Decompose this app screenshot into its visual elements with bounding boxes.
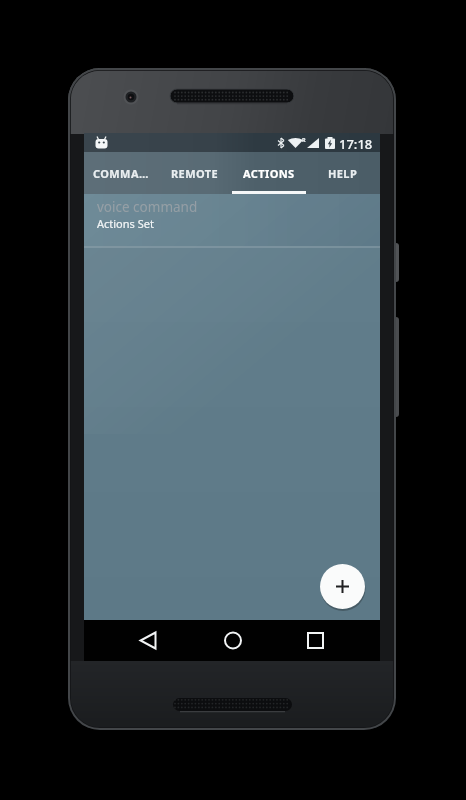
staticText: COMMA…	[93, 166, 149, 181]
button[interactable]	[198, 620, 268, 661]
button[interactable]	[128, 620, 198, 661]
button[interactable]	[320, 564, 365, 609]
staticText: ACTIONS	[243, 166, 295, 181]
button[interactable]	[268, 620, 338, 661]
staticText: HELP	[328, 166, 358, 181]
button[interactable]: voice command	[84, 194, 380, 246]
button[interactable]: HELP	[306, 152, 380, 194]
staticText: voice command	[97, 198, 198, 216]
staticText: 17:18	[339, 135, 373, 153]
button[interactable]: ACTIONS	[232, 152, 306, 194]
staticText: Actions Set	[97, 216, 154, 231]
button[interactable]: COMMA…	[84, 152, 158, 194]
button[interactable]: REMOTE	[158, 152, 232, 194]
staticText: REMOTE	[171, 166, 219, 181]
staticText: R	[302, 136, 306, 143]
